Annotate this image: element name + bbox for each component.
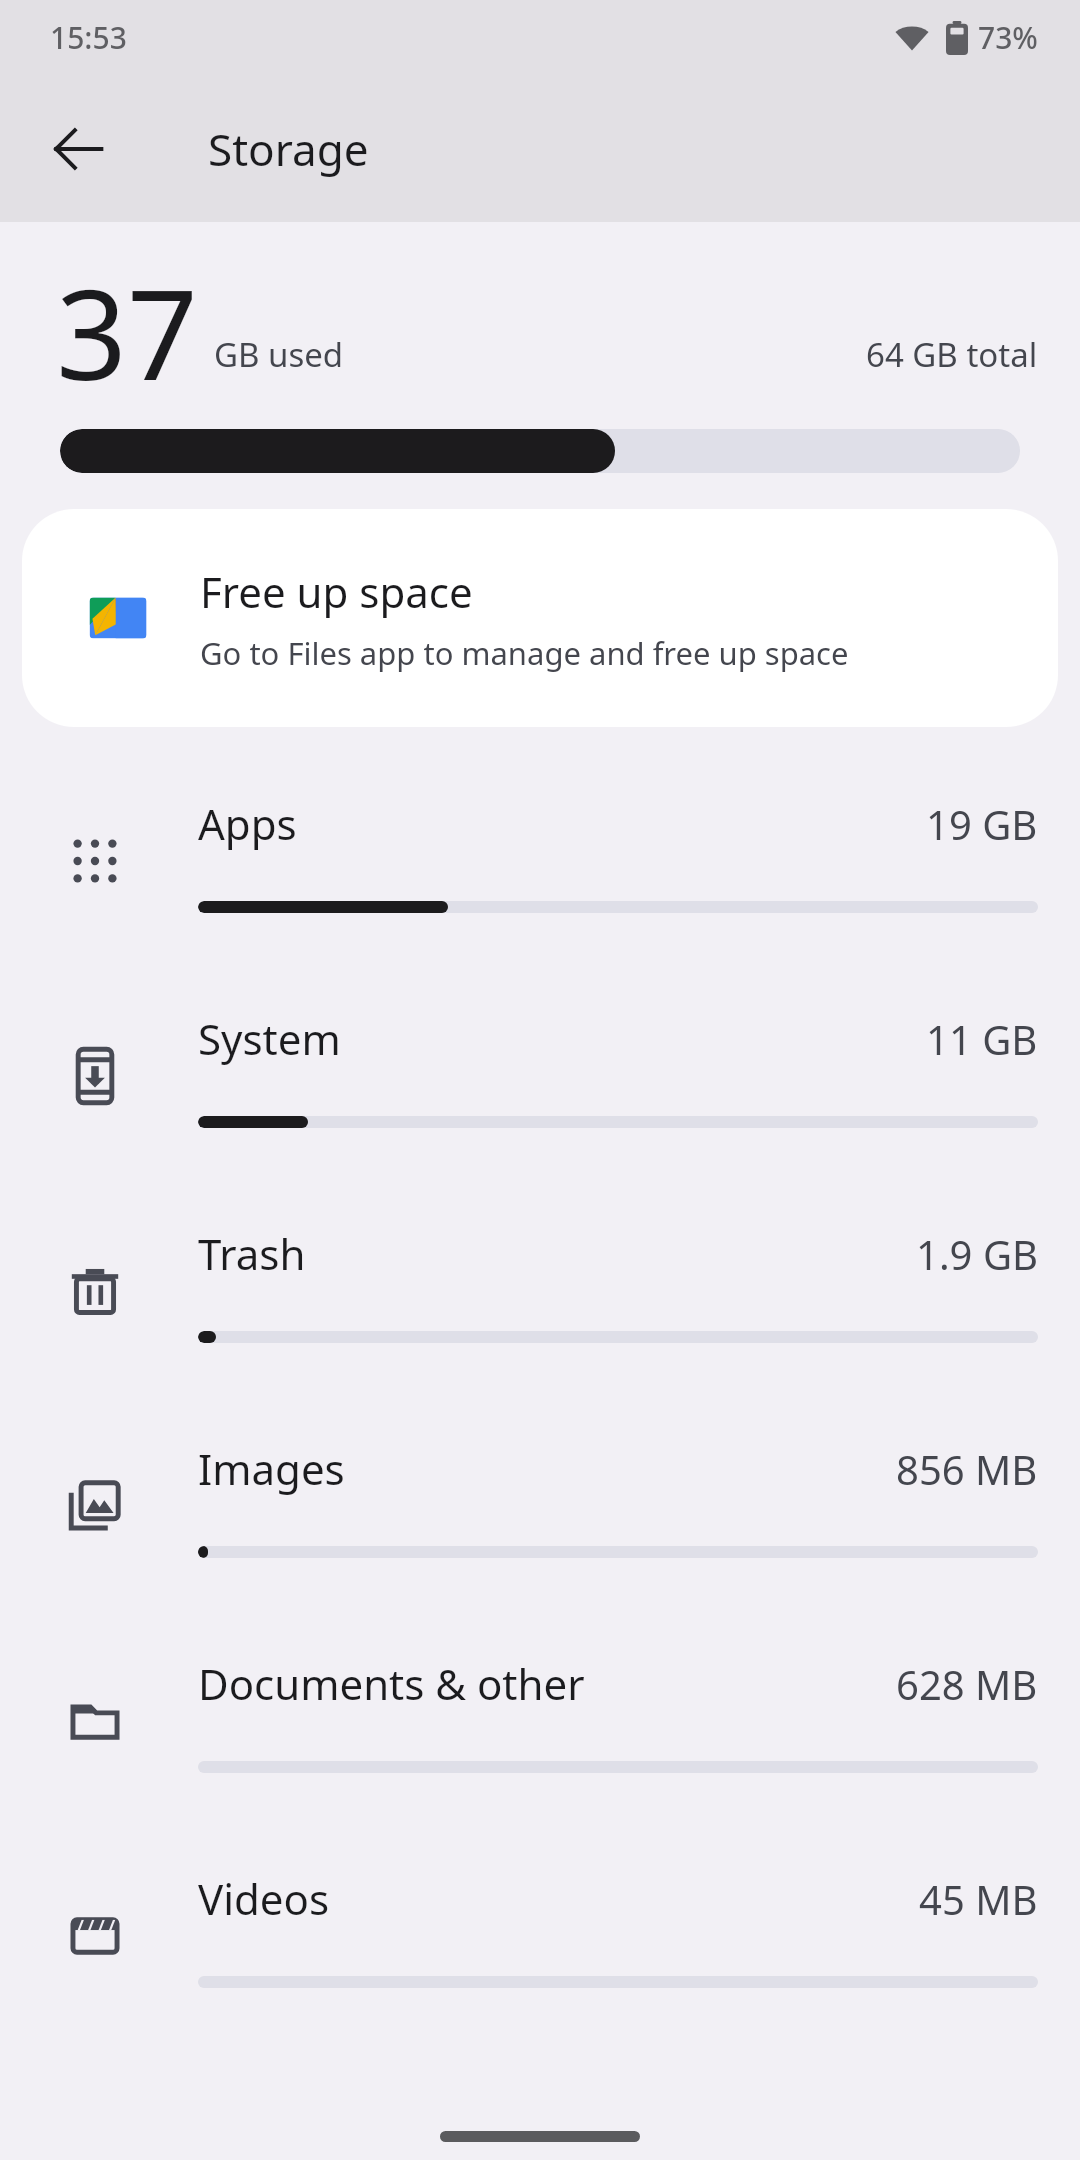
- staticText: 1.9 GB: [916, 1227, 1038, 1281]
- button[interactable]: Images: [0, 1398, 1080, 1613]
- staticText: Go to Files app to manage and free up sp…: [200, 632, 849, 674]
- button[interactable]: Apps: [0, 753, 1080, 968]
- button[interactable]: System: [0, 968, 1080, 1183]
- staticText: System: [198, 1010, 926, 1067]
- button[interactable]: Documents & other: [0, 1613, 1080, 1828]
- staticText: 628 MB: [896, 1657, 1038, 1711]
- staticText: Trash: [198, 1225, 916, 1282]
- staticText: 64 GB total: [866, 332, 1038, 377]
- staticText: 45 MB: [919, 1872, 1038, 1926]
- staticText: 73%: [978, 17, 1038, 58]
- button[interactable]: Free up space: [22, 509, 1058, 727]
- staticText: Documents & other: [198, 1655, 896, 1712]
- staticText: 37: [56, 247, 198, 397]
- staticText: Storage: [208, 119, 369, 179]
- staticText: 11 GB: [926, 1012, 1038, 1066]
- staticText: 15:53: [50, 17, 127, 58]
- staticText: Videos: [198, 1870, 919, 1927]
- staticText: Images: [198, 1440, 896, 1497]
- staticText: 19 GB: [926, 797, 1038, 851]
- button[interactable]: Videos: [0, 1828, 1080, 2043]
- staticText: Apps: [198, 795, 926, 852]
- staticText: 856 MB: [896, 1442, 1038, 1496]
- staticText: GB used: [214, 332, 344, 377]
- staticText: Free up space: [200, 563, 473, 620]
- button[interactable]: Back: [30, 101, 126, 197]
- button[interactable]: Trash: [0, 1183, 1080, 1398]
